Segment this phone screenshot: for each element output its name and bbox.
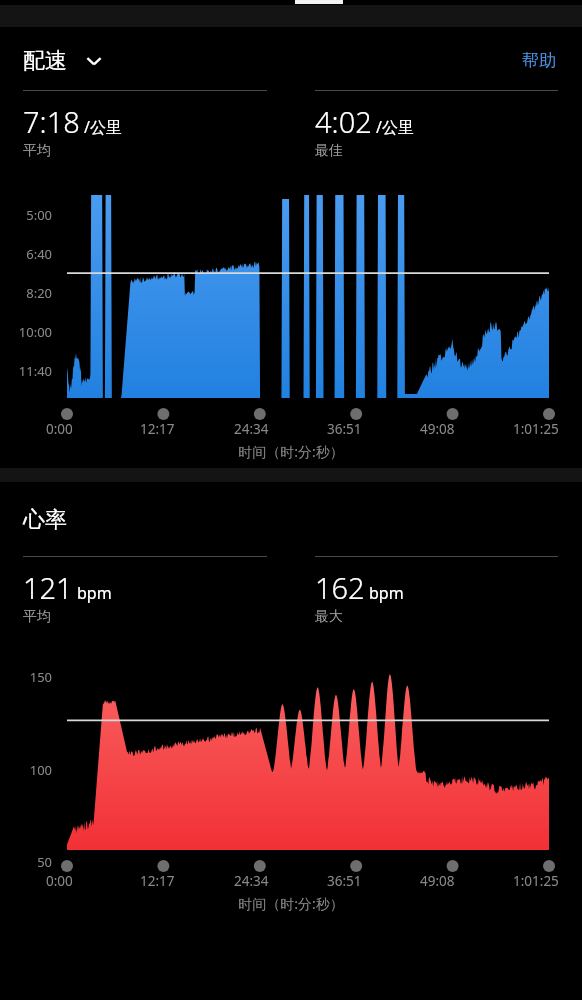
staticText: 5:00 (0, 206, 52, 224)
staticText: 36:51 (327, 420, 362, 438)
staticText: 1:01:25 (513, 420, 559, 438)
staticText: /公里 (84, 116, 122, 138)
button[interactable]: 帮助 (516, 44, 562, 77)
staticText: 50 (0, 853, 52, 871)
button[interactable]: 配速 (23, 45, 113, 77)
staticText: 4:02 (315, 102, 372, 141)
staticText: 121 (23, 568, 73, 607)
staticText: 162 (315, 568, 365, 607)
staticText: 36:51 (327, 872, 362, 890)
staticText: 150 (0, 668, 52, 686)
staticText: bpm (369, 582, 404, 604)
staticText: 6:40 (0, 245, 52, 263)
staticText: 1:01:25 (513, 872, 559, 890)
staticText: 12:17 (140, 420, 175, 438)
staticText: 49:08 (420, 420, 455, 438)
staticText: 时间（时:分:秒） (0, 894, 582, 913)
staticText: 24:34 (234, 420, 269, 438)
staticText: bpm (77, 582, 112, 604)
staticText: 49:08 (420, 872, 455, 890)
staticText: 12:17 (140, 872, 175, 890)
staticText: 24:34 (234, 872, 269, 890)
staticText: /公里 (376, 116, 414, 138)
staticText: 平均 (23, 608, 51, 626)
staticText: 帮助 (522, 50, 556, 71)
staticText: 最大 (315, 608, 343, 626)
staticText: 最佳 (315, 142, 343, 160)
staticText: 0:00 (46, 420, 73, 438)
staticText: 平均 (23, 142, 51, 160)
staticText: 0:00 (46, 872, 73, 890)
staticText: 心率 (23, 506, 67, 534)
staticText: 时间（时:分:秒） (0, 442, 582, 461)
staticText: 配速 (23, 47, 67, 75)
staticText: 100 (0, 761, 52, 779)
staticText: 8:20 (0, 284, 52, 302)
staticText: 7:18 (23, 102, 80, 141)
other: Change metric (83, 50, 105, 72)
staticText: 10:00 (0, 323, 52, 341)
staticText: 11:40 (0, 362, 52, 380)
